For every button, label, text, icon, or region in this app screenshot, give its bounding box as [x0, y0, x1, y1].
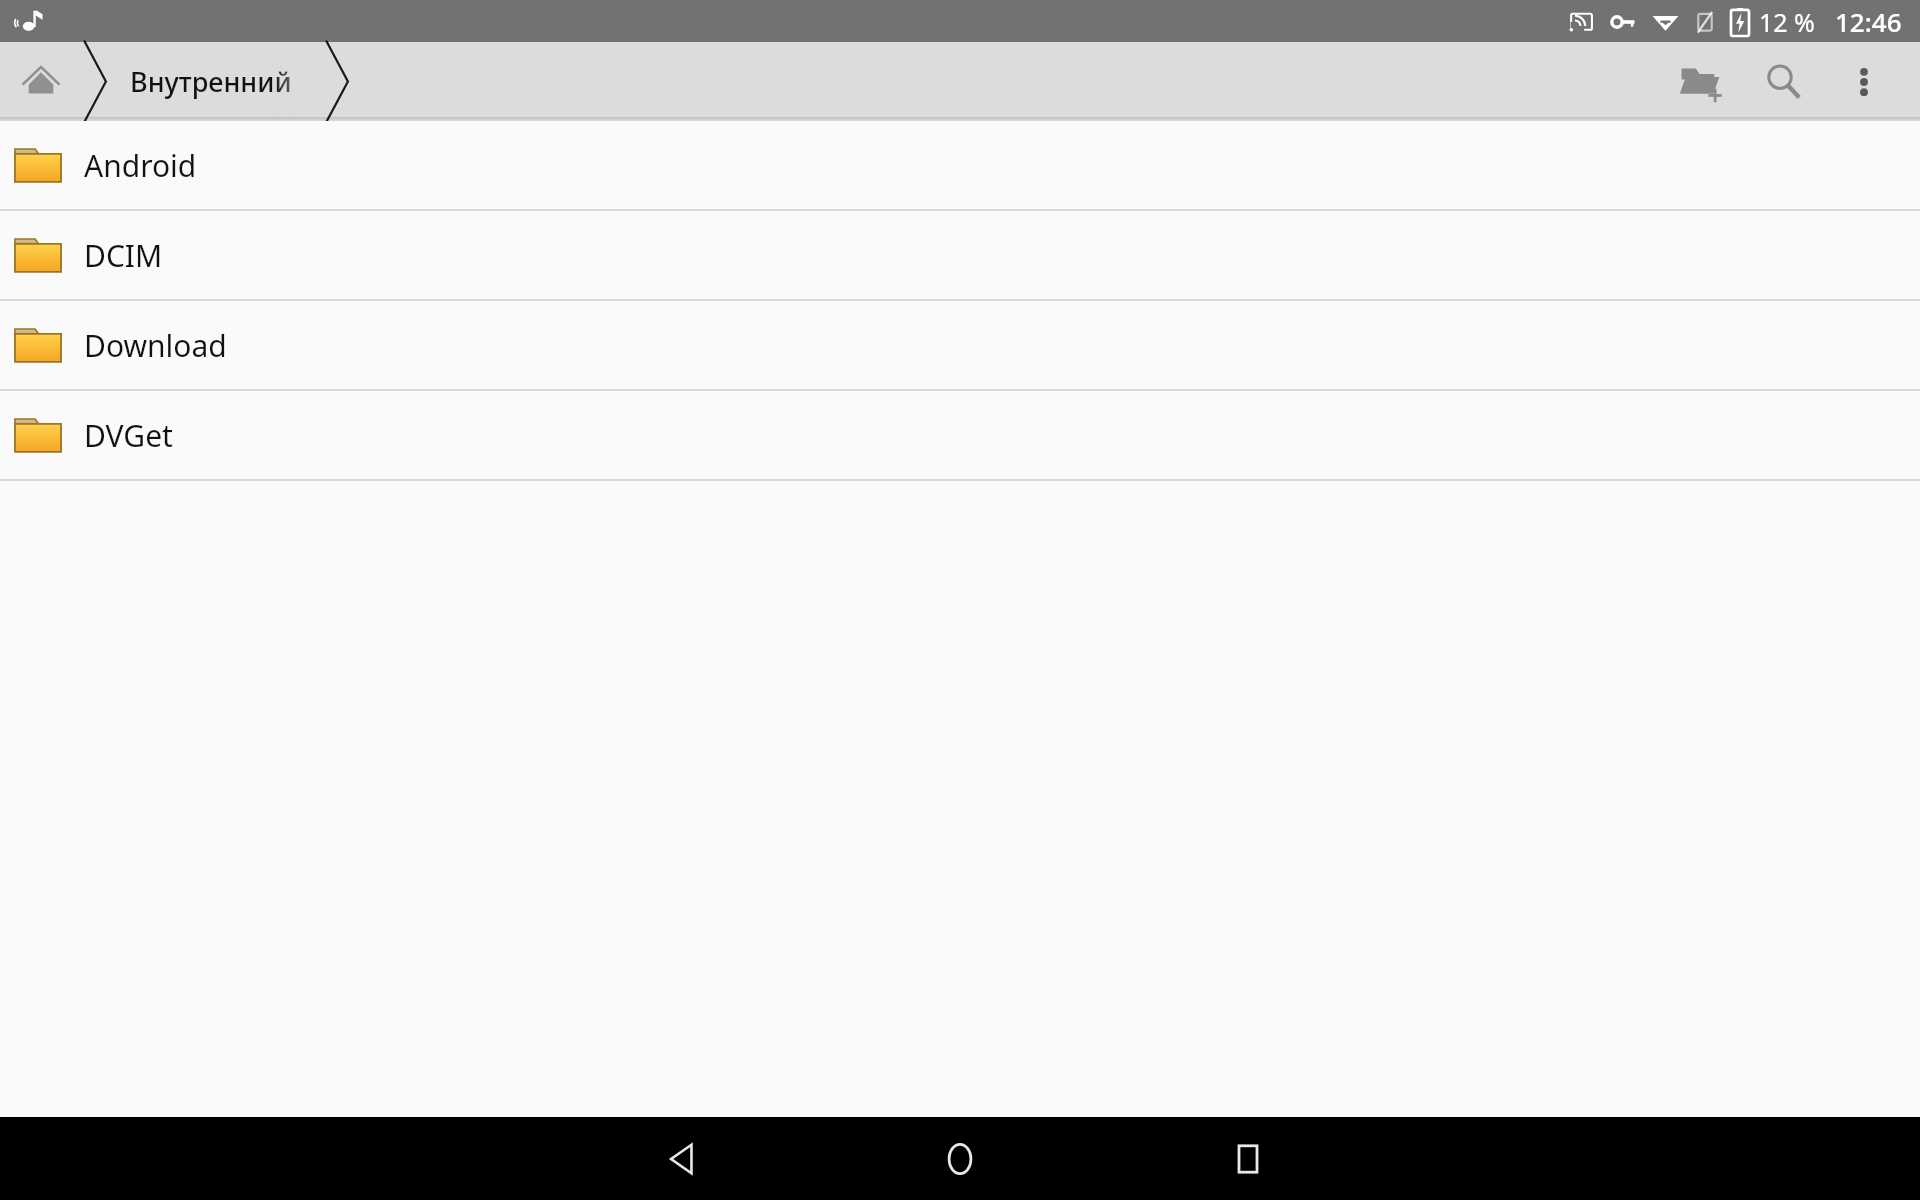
staticText: DVGet: [84, 415, 173, 456]
button[interactable]: Android: [0, 121, 1920, 209]
staticText: DCIM: [84, 235, 163, 276]
button[interactable]: DVGet: [0, 391, 1920, 479]
button[interactable]: New folder: [1662, 44, 1738, 120]
button[interactable]: More options: [1828, 46, 1900, 118]
button[interactable]: Home: [924, 1123, 996, 1195]
button[interactable]: Download: [0, 301, 1920, 389]
button[interactable]: Внутренний об: [108, 42, 324, 121]
button[interactable]: Back: [648, 1123, 720, 1195]
staticText: Android: [84, 145, 197, 186]
staticText: 12:46: [1835, 4, 1902, 39]
staticText: Download: [84, 325, 227, 366]
button[interactable]: Home: [0, 42, 82, 121]
button[interactable]: DCIM: [0, 211, 1920, 299]
button[interactable]: Recent apps: [1212, 1123, 1284, 1195]
button[interactable]: Search: [1746, 44, 1822, 120]
staticText: 12 %: [1759, 5, 1815, 39]
staticText: Внутренний об: [130, 63, 324, 100]
